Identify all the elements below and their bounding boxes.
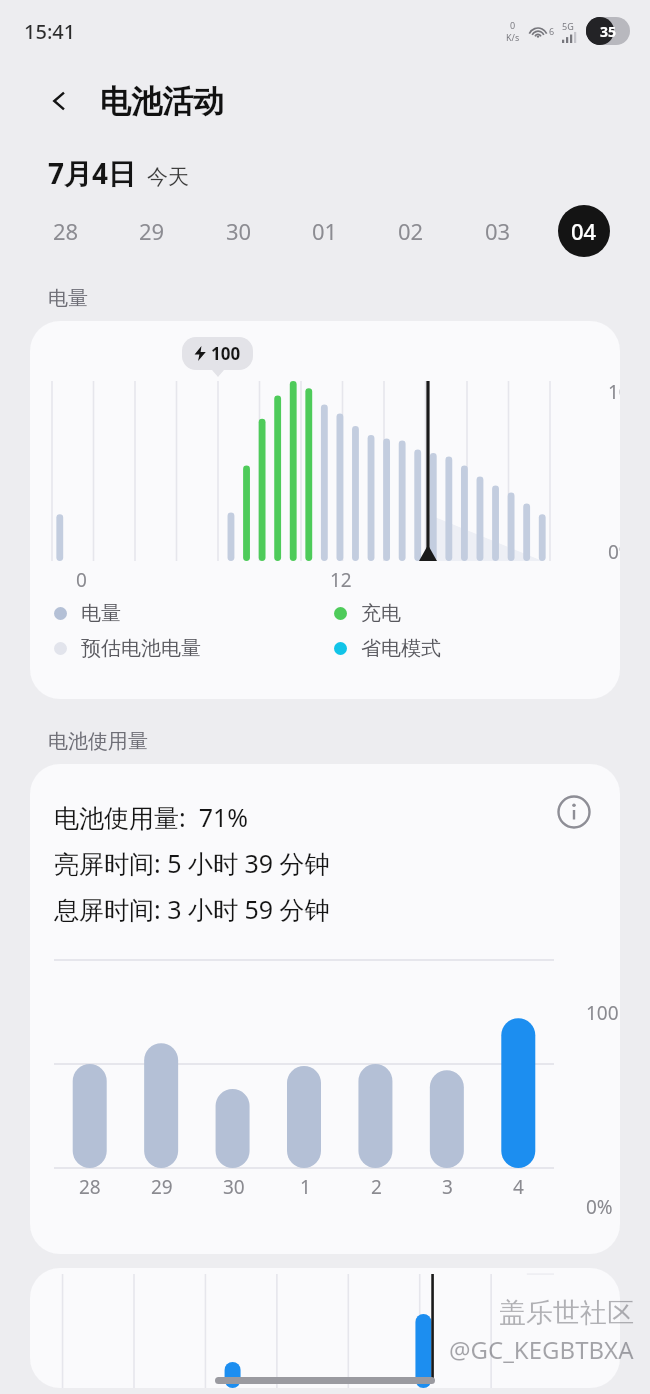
button[interactable]: 100: [30, 321, 620, 699]
staticText: 100: [586, 1000, 619, 1026]
staticText: 电池使用量: [48, 729, 148, 754]
button[interactable]: 电池使用量: 71%: [30, 764, 620, 1254]
staticText: 今天: [147, 164, 189, 190]
button[interactable]: 29: [126, 205, 178, 257]
staticText: 电量: [81, 601, 121, 626]
staticText: 30: [223, 1174, 245, 1200]
staticText: 息屏时间: 3 小时 59 分钟: [54, 892, 330, 926]
staticText: 亮屏时间: 5 小时 39 分钟: [54, 846, 330, 880]
button[interactable]: 28: [40, 205, 92, 257]
staticText: 29: [151, 1174, 173, 1200]
staticText: 0: [510, 19, 516, 31]
staticText: 3: [442, 1174, 453, 1200]
staticText: 01: [312, 216, 338, 246]
staticText: 35: [600, 22, 617, 41]
staticText: 省电模式: [361, 636, 441, 661]
staticText: 预估电池电量: [81, 636, 201, 661]
staticText: 充电: [361, 601, 401, 626]
button[interactable]: 02: [385, 205, 437, 257]
staticText: 6: [549, 25, 555, 37]
staticText: 29: [139, 216, 165, 246]
staticText: 电池使用量: 71%: [54, 800, 249, 834]
staticText: 0%: [608, 539, 620, 565]
staticText: 28: [79, 1174, 101, 1200]
staticText: 4: [513, 1174, 524, 1200]
button[interactable]: 04: [558, 205, 610, 257]
staticText: 5G: [562, 20, 574, 32]
staticText: 0%: [586, 1194, 613, 1220]
staticText: 电池活动: [100, 82, 224, 121]
staticText: 2: [371, 1174, 382, 1200]
button[interactable]: 01: [299, 205, 351, 257]
button[interactable]: [30, 1268, 620, 1388]
staticText: 03: [485, 216, 511, 246]
button[interactable]: Back: [38, 79, 82, 123]
staticText: 1: [300, 1174, 311, 1200]
staticText: 04: [571, 216, 597, 246]
staticText: 7月4日: [48, 154, 137, 192]
staticText: K/s: [506, 31, 520, 43]
staticText: 15:41: [24, 18, 76, 45]
staticText: 30: [226, 216, 252, 246]
staticText: 100: [211, 342, 241, 365]
staticText: 12: [330, 567, 352, 593]
staticText: 电量: [48, 286, 88, 311]
staticText: 02: [398, 216, 424, 246]
button[interactable]: 03: [472, 205, 524, 257]
staticText: @GC_KEGBTBXA: [449, 1333, 634, 1366]
staticText: 0: [76, 567, 87, 593]
staticText: 100: [608, 379, 620, 405]
staticText: 盖乐世社区: [499, 1296, 634, 1330]
button[interactable]: 30: [213, 205, 265, 257]
button[interactable]: Info: [552, 790, 596, 834]
staticText: 28: [53, 216, 79, 246]
